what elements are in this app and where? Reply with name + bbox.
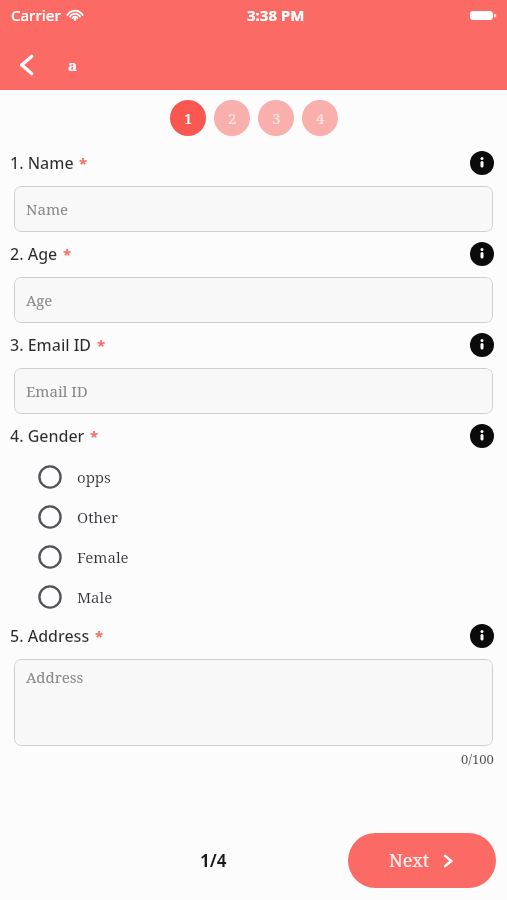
staticText: * [63,244,72,264]
button[interactable]: Male [38,577,507,617]
staticText: * [90,426,99,446]
staticText: 4. Gender [10,425,85,447]
button[interactable]: Age [14,277,493,323]
button[interactable]: Info about 2. Age [470,242,494,266]
staticText: 4 [316,108,325,128]
button[interactable]: Address [14,659,493,746]
staticText: Age [26,290,53,310]
staticText: Male [77,587,113,607]
staticText: * [95,626,104,646]
button[interactable]: Email ID [14,368,493,414]
staticText: 2 [228,108,237,128]
button[interactable]: Female [38,537,507,577]
button[interactable]: 2 [214,100,250,136]
staticText: * [97,335,106,355]
button[interactable]: Next [348,833,496,888]
button[interactable]: Info about 1. Name [470,151,494,175]
button[interactable]: Info about 5. Address [470,624,494,648]
staticText: 3 [272,108,281,128]
staticText: a [68,55,78,75]
staticText: opps [77,467,111,487]
staticText: 1/4 [200,849,227,872]
staticText: Carrier [11,5,61,25]
staticText: Other [77,507,119,527]
staticText: 3. Email ID [10,334,92,356]
staticText: Next [389,848,430,873]
staticText: Name [26,199,69,219]
button[interactable]: Other [38,497,507,537]
staticText: 0/100 [461,750,494,768]
staticText: 2. Age [10,243,58,265]
button[interactable]: 1 [170,100,206,136]
staticText: 3:38 PM [247,5,305,25]
staticText: 1 [184,108,193,128]
button[interactable]: Back [0,40,54,90]
staticText: Email ID [26,381,88,401]
button[interactable]: Info about 3. Email ID [470,333,494,357]
button[interactable]: opps [38,457,507,497]
button[interactable]: Info about 4. Gender [470,424,494,448]
staticText: * [79,153,88,173]
button[interactable]: Name [14,186,493,232]
staticText: Female [77,547,129,567]
button[interactable]: 4 [302,100,338,136]
button[interactable]: 3 [258,100,294,136]
staticText: Address [26,667,84,687]
staticText: 1. Name [10,152,74,174]
staticText: 5. Address [10,625,90,647]
